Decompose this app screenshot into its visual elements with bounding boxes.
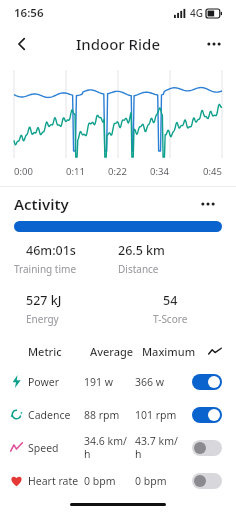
staticText: Cadence: [28, 408, 71, 422]
staticText: Indoor Ride: [76, 34, 161, 54]
staticText: 0:00: [14, 165, 33, 178]
staticText: Heart rate: [28, 474, 79, 488]
button[interactable]: Enabled: [192, 407, 222, 423]
staticText: 0:45: [203, 165, 222, 178]
staticText: 0 bpm: [135, 474, 167, 488]
staticText: 43.7 km/ h: [135, 434, 178, 461]
button[interactable]: Back: [6, 28, 38, 60]
button[interactable]: Activity options: [194, 190, 222, 218]
staticText: 191 w: [84, 375, 114, 389]
staticText: 366 w: [135, 375, 165, 389]
staticText: 0:34: [150, 165, 169, 178]
staticText: 0:22: [108, 165, 127, 178]
staticText: 0 bpm: [84, 474, 116, 488]
button[interactable]: Enabled: [192, 374, 222, 390]
button[interactable]: Cadence: [0, 398, 236, 431]
button[interactable]: Disabled: [192, 440, 222, 456]
staticText: 88 rpm: [84, 408, 120, 422]
staticText: 101 rpm: [135, 408, 177, 422]
staticText: 0:11: [66, 165, 85, 178]
staticText: Distance: [118, 262, 159, 276]
staticText: Maximum: [142, 344, 196, 359]
staticText: 46m:01s: [26, 242, 76, 259]
staticText: Speed: [28, 441, 59, 455]
button[interactable]: More options: [198, 28, 230, 60]
staticText: Activity: [14, 194, 69, 214]
staticText: 34.6 km/ h: [84, 434, 127, 461]
staticText: Average: [90, 344, 134, 359]
staticText: 54: [163, 292, 178, 309]
staticText: Training time: [14, 262, 77, 276]
staticText: T-Score: [153, 312, 188, 326]
button[interactable]: Speed: [0, 431, 236, 464]
staticText: 4G: [190, 6, 203, 20]
staticText: Power: [28, 375, 60, 389]
staticText: 26.5 km: [118, 242, 165, 259]
staticText: 527 kJ: [26, 292, 62, 309]
button[interactable]: Power: [0, 365, 236, 398]
staticText: 16:56: [14, 5, 44, 21]
staticText: Metric: [28, 344, 62, 359]
button[interactable]: Disabled: [192, 473, 222, 489]
button[interactable]: Heart rate: [0, 464, 236, 497]
staticText: Energy: [26, 312, 59, 326]
